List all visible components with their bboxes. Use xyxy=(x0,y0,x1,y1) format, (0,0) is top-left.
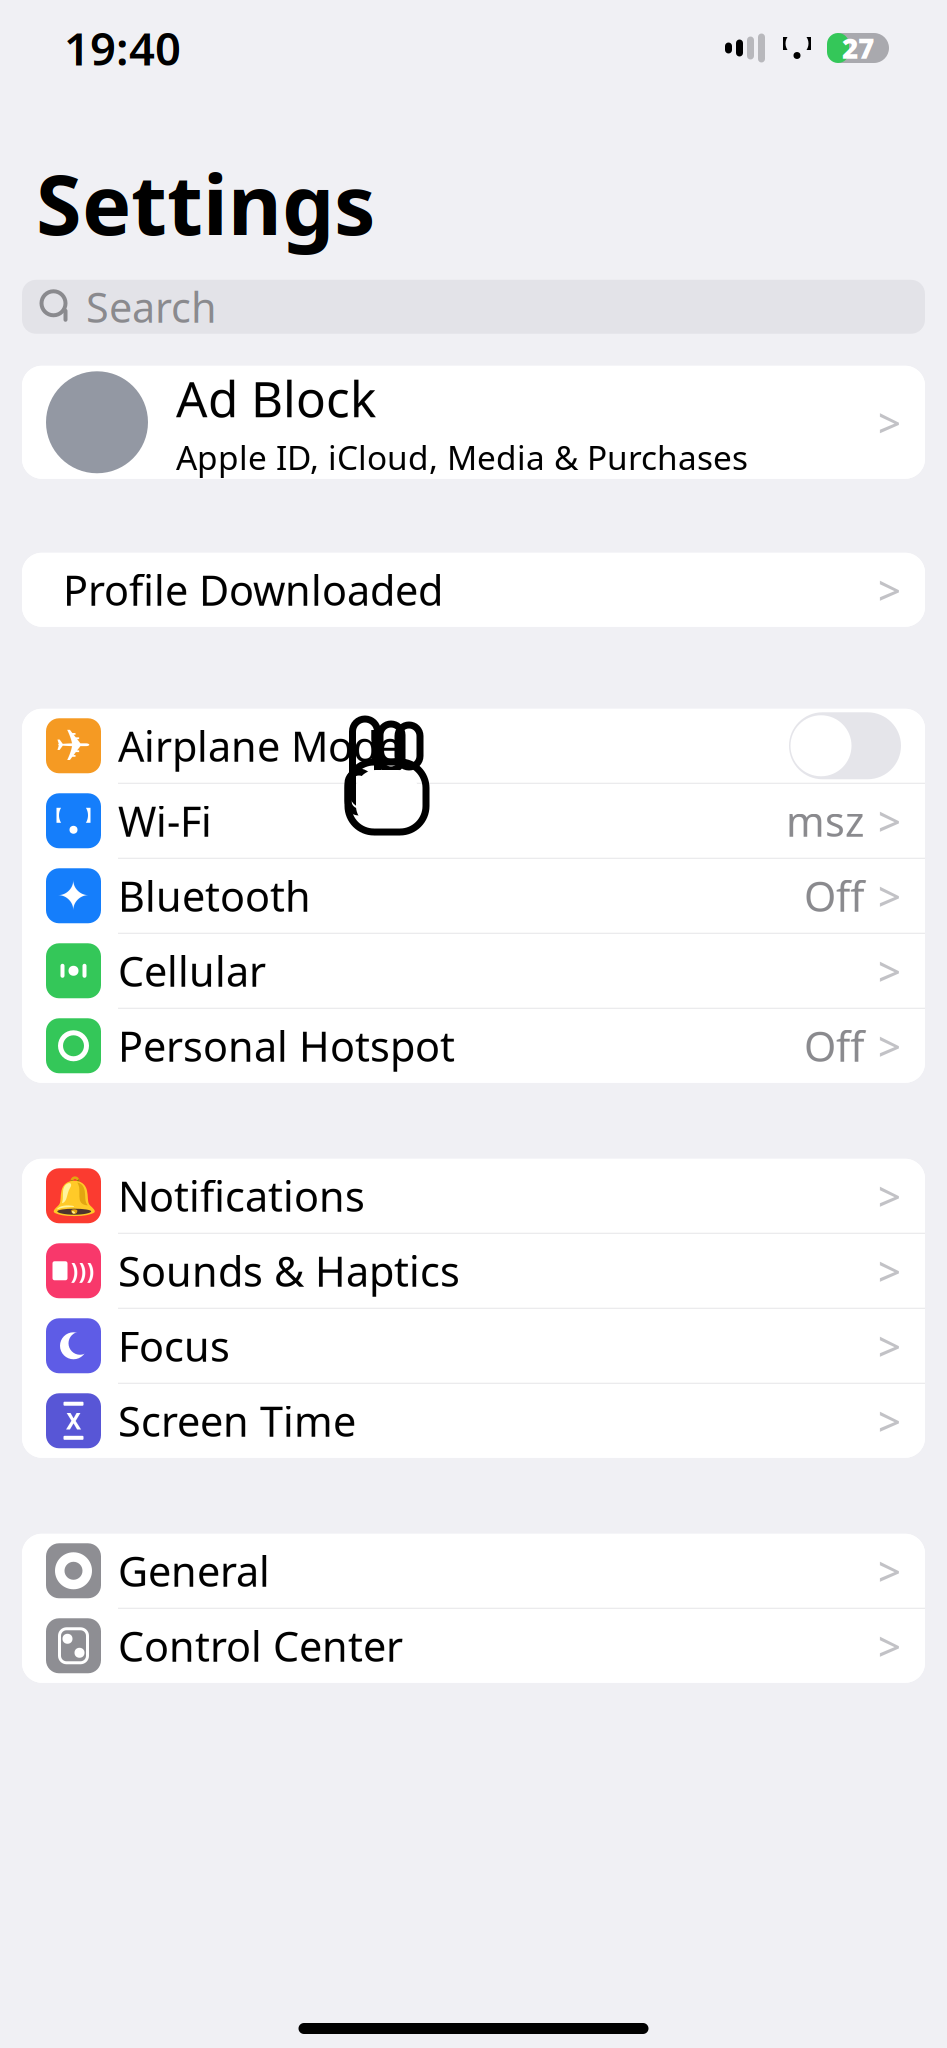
button[interactable]: Ad Block xyxy=(22,366,925,479)
button[interactable]: Focus xyxy=(22,1309,925,1383)
button[interactable]: 🔔 xyxy=(22,1159,925,1233)
staticText: General xyxy=(118,1543,270,1598)
staticText: 27 xyxy=(842,29,874,67)
staticText: msz xyxy=(786,793,864,848)
staticText: Off xyxy=(804,868,864,923)
button[interactable]: Profile Downloaded xyxy=(22,553,925,627)
staticText: Apple ID, iCloud, Media & Purchases xyxy=(176,435,748,479)
staticText: Bluetooth xyxy=(118,868,311,923)
staticText: > xyxy=(878,1394,901,1447)
staticText: > xyxy=(878,869,901,922)
staticText: Settings xyxy=(36,148,375,258)
staticText: > xyxy=(878,563,901,616)
button[interactable]: X xyxy=(22,1384,925,1458)
staticText: Personal Hotspot xyxy=(118,1018,455,1073)
staticText: > xyxy=(878,1544,901,1597)
staticText: Screen Time xyxy=(118,1393,356,1448)
staticText: Search xyxy=(86,279,217,334)
staticText: Airplane Mode xyxy=(118,718,401,773)
staticText: Off xyxy=(804,1018,864,1073)
staticText: Notifications xyxy=(118,1168,365,1223)
staticText: Wi-Fi xyxy=(118,793,212,848)
button[interactable]: General xyxy=(22,1534,925,1608)
staticText: ✦ xyxy=(56,873,90,918)
staticText: ))) xyxy=(70,1256,94,1286)
staticText: 19:40 xyxy=(64,18,181,78)
staticText: > xyxy=(878,1619,901,1672)
button[interactable]: Control Center xyxy=(22,1609,925,1683)
staticText: > xyxy=(878,1319,901,1372)
staticText: > xyxy=(878,1244,901,1297)
button[interactable]: Cellular xyxy=(22,934,925,1008)
button[interactable]: Search xyxy=(22,280,925,334)
button[interactable]: ✈ xyxy=(22,709,925,783)
staticText: > xyxy=(878,396,901,449)
staticText: 🔔 xyxy=(50,1174,96,1217)
staticText: ✈ xyxy=(55,721,92,771)
button[interactable]: ))) xyxy=(22,1234,925,1308)
staticText: > xyxy=(878,1169,901,1222)
staticText: Focus xyxy=(118,1318,230,1373)
staticText: Sounds & Haptics xyxy=(118,1243,460,1298)
button[interactable]: Wi-Fi xyxy=(22,784,925,858)
button[interactable]: Personal Hotspot xyxy=(22,1009,925,1083)
button[interactable]: ✦ xyxy=(22,859,925,933)
staticText: Control Center xyxy=(118,1618,403,1673)
staticText: X xyxy=(66,1406,81,1436)
staticText: > xyxy=(878,944,901,997)
staticText: Cellular xyxy=(118,943,266,998)
staticText: Ad Block xyxy=(176,365,376,431)
staticText: Profile Downloaded xyxy=(63,562,443,617)
staticText: > xyxy=(878,794,901,847)
staticText: > xyxy=(878,1019,901,1072)
